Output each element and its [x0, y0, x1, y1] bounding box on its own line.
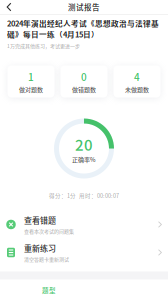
staticText: 题型 [42, 285, 56, 295]
staticText: 查看本次考试的问题集 [24, 227, 74, 235]
staticText: 做对题数 [19, 85, 43, 94]
button[interactable]: 重新练习 [0, 238, 168, 266]
staticText: 得分：1分 用时：00:00:07 [49, 191, 119, 199]
staticText: 做错题数 [72, 85, 96, 94]
staticText: 2024年演出经纪人考试《思想政治与法律基础》每日一练（4月15日） [7, 18, 159, 40]
staticText: 重新练习 [24, 242, 56, 254]
staticText: 正确率% [72, 155, 96, 164]
staticText: 未做题数 [125, 85, 149, 94]
button[interactable]: 返回 [0, 0, 18, 14]
staticText: 1万完成其他练习，考试更进一步 [7, 42, 80, 49]
staticText: 查看错题 [24, 214, 56, 226]
staticText: 测试报告 [68, 2, 100, 12]
staticText: 4 [134, 69, 140, 84]
staticText: 20 [75, 133, 93, 155]
staticText: 0 [81, 69, 87, 84]
button[interactable]: 查看错题 [0, 210, 168, 238]
staticText: 1 [28, 69, 34, 84]
staticText: 清空答题卡重新测试 [24, 255, 69, 263]
